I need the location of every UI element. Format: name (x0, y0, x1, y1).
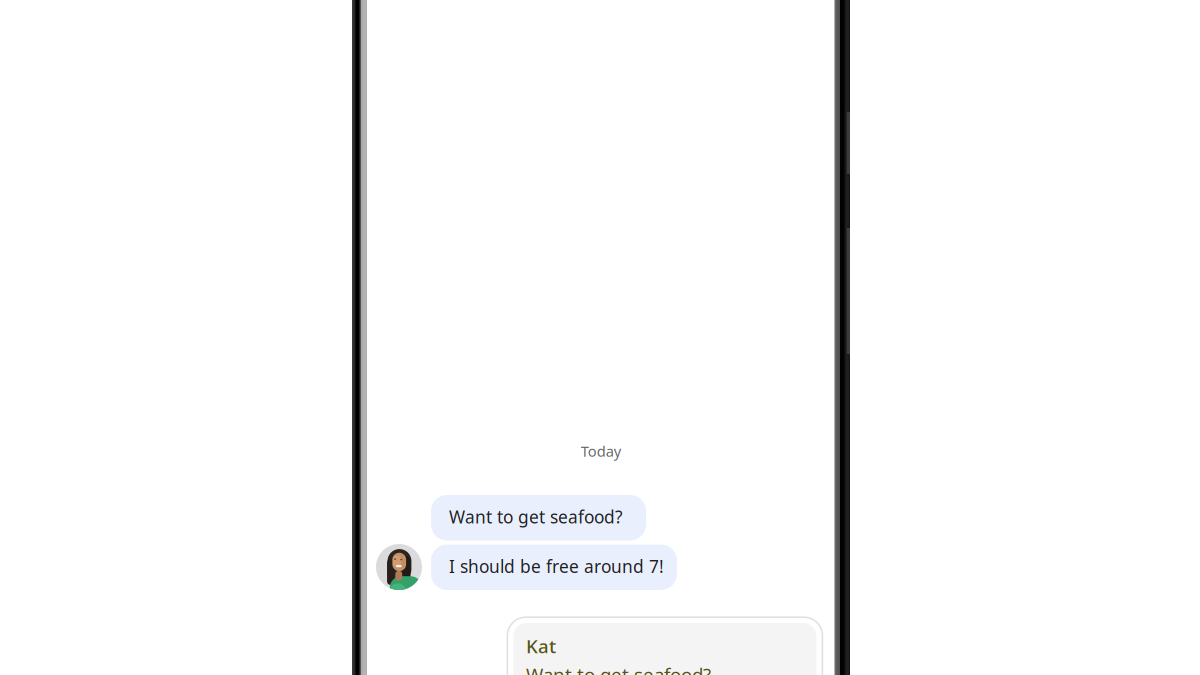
button[interactable]: Want to get seafood? (431, 495, 646, 540)
staticText: I should be free around 7! (449, 555, 664, 578)
staticText: Want to get seafood? (449, 505, 623, 528)
button[interactable]: Kat (507, 617, 822, 675)
staticText: Kat (526, 634, 556, 658)
staticText: Want to get seafood? (526, 662, 711, 675)
button[interactable]: I should be free around 7! (431, 544, 677, 590)
staticText: Today (581, 441, 621, 461)
